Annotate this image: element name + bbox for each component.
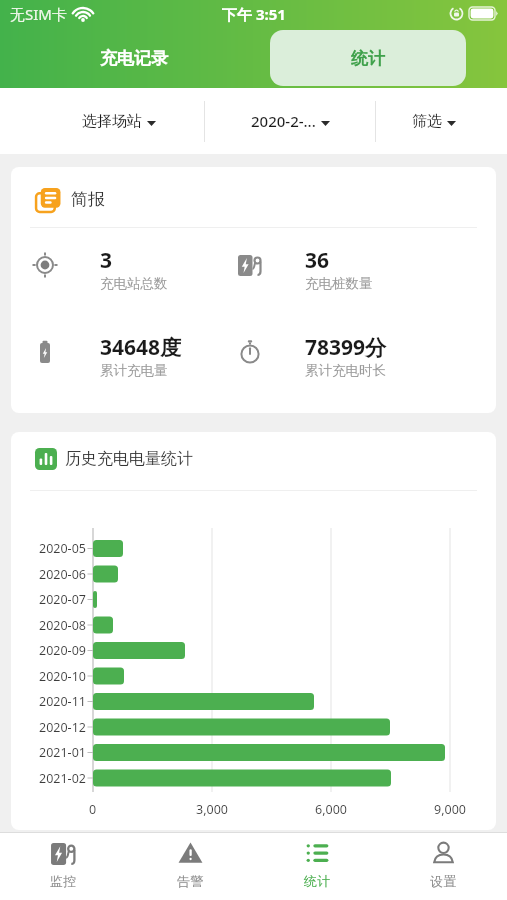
- button[interactable]: 监控: [0, 833, 127, 900]
- staticText: 统计: [351, 48, 385, 69]
- staticText: 2021-02: [39, 770, 86, 787]
- staticText: 2020-12: [39, 719, 86, 736]
- button[interactable]: 统计: [254, 833, 381, 900]
- staticText: 2020-07: [39, 591, 86, 608]
- staticText: 监控: [50, 873, 77, 890]
- staticText: 筛选: [412, 112, 442, 131]
- staticText: 充电桩数量: [305, 275, 373, 292]
- staticText: 6,000: [315, 801, 347, 818]
- staticText: 3,000: [196, 801, 228, 818]
- staticText: 选择场站: [82, 112, 142, 131]
- staticText: 充电站总数: [100, 275, 168, 292]
- staticText: 2020-11: [39, 693, 86, 710]
- button[interactable]: 统计: [270, 30, 466, 86]
- staticText: 36: [305, 246, 330, 275]
- staticText: 下午 3:51: [222, 4, 286, 24]
- staticText: 9,000: [434, 801, 466, 818]
- button[interactable]: 设置: [380, 833, 507, 900]
- staticText: 统计: [304, 873, 331, 890]
- staticText: 历史充电电量统计: [65, 449, 193, 469]
- staticText: 无SIM卡: [10, 4, 67, 24]
- staticText: 2020-09: [39, 642, 86, 659]
- staticText: 2021-01: [39, 744, 86, 761]
- button[interactable]: 2020-2-...: [205, 88, 375, 154]
- staticText: 充电记录: [100, 48, 168, 69]
- staticText: 3: [100, 246, 113, 275]
- staticText: 累计充电时长: [305, 362, 386, 379]
- staticText: 0: [89, 801, 97, 818]
- staticText: 78399分: [305, 333, 387, 362]
- staticText: 2020-08: [39, 617, 86, 634]
- staticText: 2020-2-...: [251, 111, 316, 131]
- staticText: 2020-10: [39, 668, 86, 685]
- staticText: 告警: [177, 873, 204, 890]
- staticText: 2020-06: [39, 566, 86, 583]
- button[interactable]: 告警: [127, 833, 254, 900]
- staticText: 34648度: [100, 333, 182, 362]
- button[interactable]: 选择场站: [0, 88, 204, 154]
- staticText: 简报: [71, 189, 105, 210]
- staticText: 2020-05: [39, 540, 86, 557]
- staticText: 设置: [430, 873, 457, 890]
- staticText: 累计充电量: [100, 362, 168, 379]
- button[interactable]: 筛选: [376, 88, 507, 154]
- button[interactable]: 充电记录: [7, 28, 261, 88]
